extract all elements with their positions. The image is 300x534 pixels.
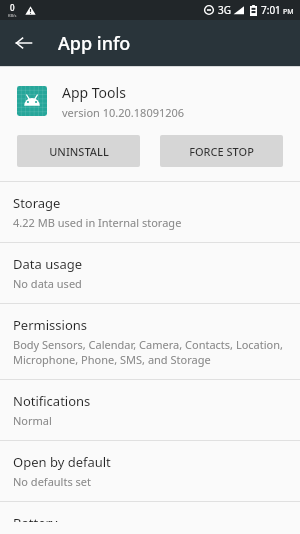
staticText: App Tools (62, 83, 126, 102)
staticText: No defaults set (13, 474, 91, 489)
staticText: 3G (218, 3, 231, 17)
staticText: PM (283, 7, 294, 17)
button[interactable]: UNINSTALL (17, 135, 140, 167)
staticText: KB/s (8, 13, 17, 18)
staticText: No data used (13, 276, 82, 291)
staticText: Data usage (13, 255, 83, 273)
button[interactable]: Notifications (0, 380, 300, 440)
staticText: Notifications (13, 392, 91, 410)
staticText: 0 (10, 2, 15, 13)
button[interactable]: Battery (0, 502, 300, 534)
staticText: 7:01 (261, 3, 281, 17)
button[interactable]: Permissions (0, 304, 300, 379)
staticText: Body Sensors, Calendar, Camera, Contacts… (13, 337, 283, 367)
button[interactable]: FORCE STOP (160, 135, 283, 167)
staticText: Open by default (13, 453, 111, 471)
staticText: Permissions (13, 316, 88, 334)
staticText: UNINSTALL (49, 144, 109, 159)
staticText: Normal (13, 413, 52, 428)
staticText: FORCE STOP (189, 144, 254, 159)
button[interactable]: Back (8, 27, 40, 59)
staticText: Storage (13, 194, 61, 212)
staticText: App info (58, 31, 131, 56)
staticText: version 10.20.18091206 (62, 105, 185, 120)
button[interactable]: Data usage (0, 243, 300, 303)
button[interactable]: Storage (0, 182, 300, 242)
staticText: 4.22 MB used in Internal storage (13, 215, 182, 230)
button[interactable]: App Tools (0, 67, 300, 135)
button[interactable]: Open by default (0, 441, 300, 501)
staticText: Battery (13, 514, 58, 522)
